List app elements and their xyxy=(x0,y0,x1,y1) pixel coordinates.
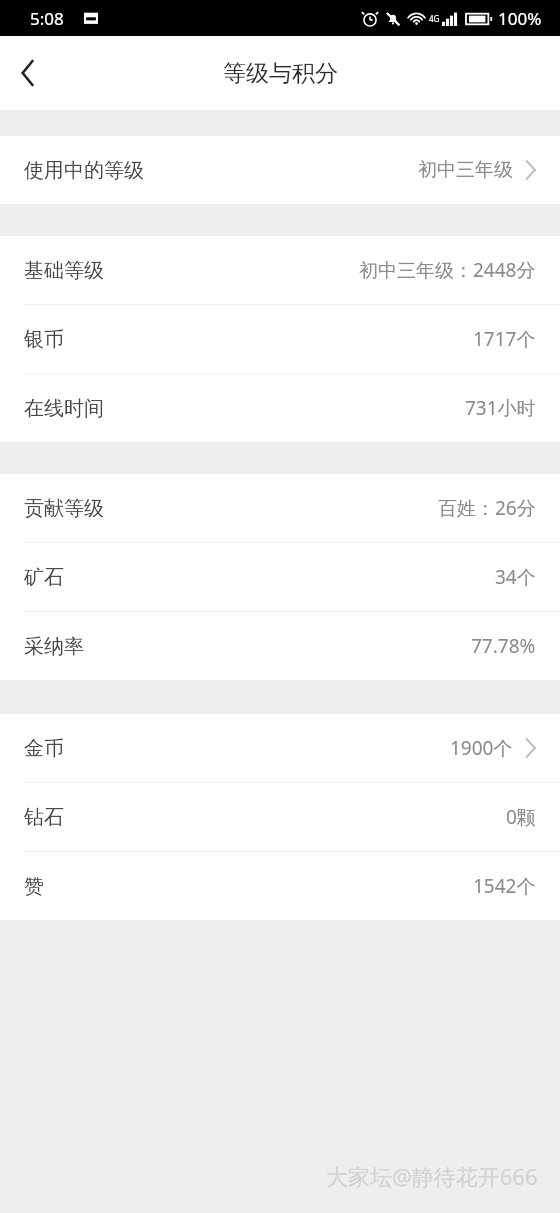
button[interactable]: 赞 xyxy=(0,852,560,920)
staticText: 1542个 xyxy=(473,873,536,899)
button[interactable]: 矿石 xyxy=(0,543,560,611)
button[interactable]: 银币 xyxy=(0,305,560,373)
staticText: 5:08 xyxy=(30,7,64,30)
staticText: 731小时 xyxy=(465,395,536,421)
staticText: 初中三年级：2448分 xyxy=(359,257,536,283)
staticText: 等级与积分 xyxy=(223,59,338,88)
staticText: 赞 xyxy=(24,874,44,899)
staticText: 采纳率 xyxy=(24,634,84,659)
staticText: 大家坛@静待花开666 xyxy=(326,1161,538,1191)
staticText: 贡献等级 xyxy=(24,496,104,521)
staticText: 银币 xyxy=(24,327,64,352)
staticText: 0颗 xyxy=(506,804,536,830)
staticText: 基础等级 xyxy=(24,258,104,283)
staticText: 1717个 xyxy=(473,326,536,352)
staticText: 使用中的等级 xyxy=(24,158,144,183)
staticText: 100% xyxy=(498,7,542,30)
button[interactable]: 钻石 xyxy=(0,783,560,851)
button[interactable]: 使用中的等级 xyxy=(0,136,560,204)
staticText: 金币 xyxy=(24,736,64,761)
staticText: 钻石 xyxy=(24,805,64,830)
staticText: 矿石 xyxy=(24,565,64,590)
staticText: 34个 xyxy=(495,564,536,590)
button[interactable]: 贡献等级 xyxy=(0,474,560,542)
staticText: 百姓：26分 xyxy=(438,495,536,521)
staticText: 4G xyxy=(429,13,440,24)
staticText: 77.78% xyxy=(471,633,536,659)
button[interactable]: Back xyxy=(0,45,56,101)
staticText: 1900个 xyxy=(450,735,513,761)
staticText: 初中三年级 xyxy=(418,158,513,182)
button[interactable]: 金币 xyxy=(0,714,560,782)
staticText: 在线时间 xyxy=(24,396,104,421)
button[interactable]: 在线时间 xyxy=(0,374,560,442)
button[interactable]: 采纳率 xyxy=(0,612,560,680)
button[interactable]: 基础等级 xyxy=(0,236,560,304)
